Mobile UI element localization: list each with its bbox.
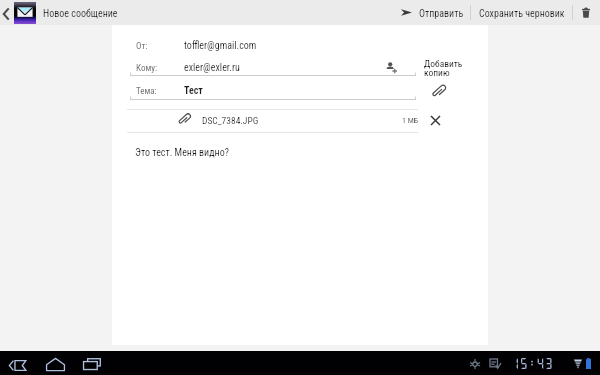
- button[interactable]: Удалить: [573, 0, 600, 25]
- staticText: 1 МБ: [402, 116, 419, 125]
- button[interactable]: Добавить получателя: [384, 60, 402, 78]
- staticText: toffler@gmail.com: [184, 40, 257, 52]
- button[interactable]: Удалить вложение: [424, 109, 446, 131]
- button[interactable]: Главный экран: [42, 354, 68, 373]
- button[interactable]: Тема:: [112, 77, 488, 99]
- staticText: DSC_7384.JPG: [202, 115, 259, 126]
- staticText: Кому:: [136, 63, 158, 74]
- button[interactable]: Сохранить черновик: [471, 0, 572, 25]
- staticText: Новое сообщение: [43, 8, 118, 20]
- staticText: Тест: [184, 85, 203, 97]
- staticText: Добавить: [424, 58, 463, 69]
- staticText: копию: [424, 67, 450, 78]
- staticText: exler@exler.ru: [184, 62, 240, 74]
- button[interactable]: Кому:: [112, 54, 488, 76]
- button[interactable]: Назад: [0, 0, 38, 25]
- staticText: 15:43: [511, 357, 553, 371]
- staticText: Сохранить черновик: [479, 8, 564, 20]
- staticText: От:: [136, 41, 148, 52]
- button[interactable]: Отправить: [394, 0, 470, 25]
- button[interactable]: Назад: [4, 354, 30, 373]
- button[interactable]: Прикрепить файл: [430, 82, 448, 100]
- button[interactable]: Добавить: [420, 54, 464, 78]
- staticText: Отправить: [419, 8, 463, 20]
- button[interactable]: Недавние приложения: [80, 354, 106, 373]
- button[interactable]: От:: [112, 32, 488, 54]
- staticText: Это тест. Меня видно?: [135, 147, 229, 159]
- button[interactable]: DSC_7384.JPG: [112, 109, 488, 131]
- staticText: Тема:: [136, 86, 157, 97]
